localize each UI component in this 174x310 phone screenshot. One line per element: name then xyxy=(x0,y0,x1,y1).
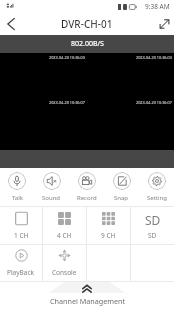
staticText: Setting xyxy=(147,194,167,202)
button[interactable]: Fullscreen xyxy=(154,12,174,35)
button[interactable]: Talk xyxy=(0,168,34,206)
staticText: PlayBack xyxy=(7,268,35,277)
button[interactable]: Console xyxy=(43,245,86,281)
button[interactable]: PlayBack xyxy=(0,245,42,281)
staticText: 2023-04-20 10:36:03 xyxy=(136,55,172,60)
staticText: 2023-04-20 10:36:07 xyxy=(49,100,85,105)
staticText: 1 CH xyxy=(14,231,29,240)
staticText: Record xyxy=(77,194,97,202)
button[interactable]: 2023-04-20 10:36:03 xyxy=(87,53,174,98)
staticText: Console xyxy=(52,268,77,277)
button[interactable]: Channel Management xyxy=(0,282,174,306)
button[interactable]: Back xyxy=(0,12,22,35)
button[interactable]: 2023-04-20 10:36:07 xyxy=(87,98,174,150)
staticText: 9 CH xyxy=(101,231,116,240)
staticText: 4 CH xyxy=(57,231,72,240)
staticText: SD xyxy=(148,231,157,240)
staticText: Snap xyxy=(114,194,129,202)
staticText: Talk xyxy=(12,194,23,202)
button[interactable]: Record xyxy=(69,168,104,206)
staticText: 9:38 AM xyxy=(145,2,170,11)
button[interactable]: Setting xyxy=(139,168,174,206)
button[interactable]: Snap xyxy=(104,168,139,206)
staticText: Channel Management xyxy=(50,296,125,306)
staticText: DVR-CH-01 xyxy=(61,17,113,31)
button[interactable]: 4 CH xyxy=(43,207,86,244)
button[interactable]: 2023-04-20 10:36:07 xyxy=(0,98,87,150)
button[interactable]: Sound xyxy=(34,168,69,206)
staticText: 2023-04-20 10:36:03 xyxy=(49,55,85,60)
button[interactable]: 2023-04-20 10:36:03 xyxy=(0,53,87,98)
staticText: 802.00B/S xyxy=(71,39,104,49)
button[interactable]: 9 CH xyxy=(87,207,130,244)
button[interactable]: 1 CH xyxy=(0,207,42,244)
staticText: SD xyxy=(145,212,161,225)
staticText: Sound xyxy=(42,194,61,202)
staticText: 2023-04-20 10:36:07 xyxy=(136,100,172,105)
button[interactable]: SD xyxy=(131,207,174,244)
